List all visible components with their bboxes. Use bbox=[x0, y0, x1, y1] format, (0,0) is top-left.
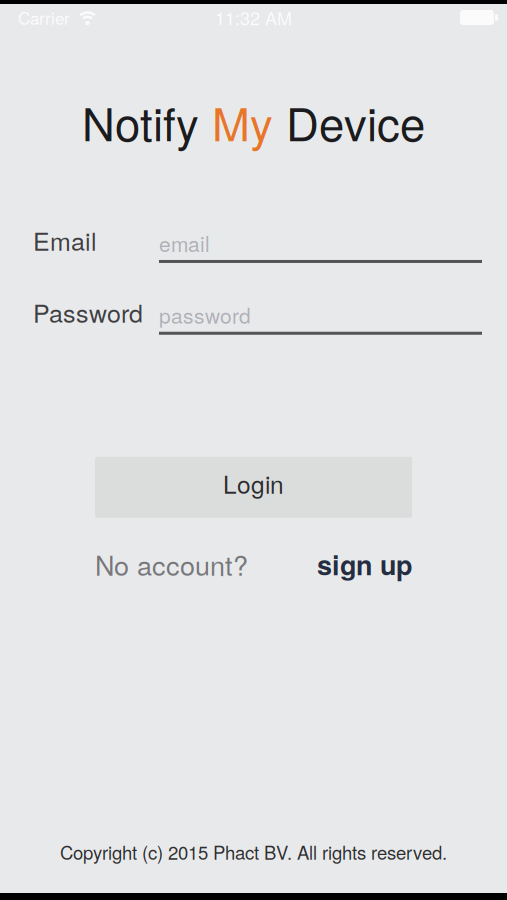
button[interactable]: Login bbox=[95, 457, 412, 518]
staticText: Login bbox=[223, 466, 284, 501]
button[interactable]: Password field bbox=[159, 300, 482, 335]
staticText: 11:32 AM bbox=[215, 5, 292, 30]
staticText: Notify bbox=[82, 89, 212, 154]
staticText: My bbox=[212, 89, 273, 154]
staticText: Carrier bbox=[18, 5, 70, 30]
staticText: Email bbox=[33, 222, 97, 258]
staticText: No account? bbox=[95, 545, 248, 583]
staticText: password bbox=[159, 300, 251, 330]
staticText: Password bbox=[33, 294, 143, 330]
staticText: Device bbox=[273, 89, 425, 154]
staticText: Copyright (c) 2015 Phact BV. All rights … bbox=[60, 838, 447, 865]
button[interactable]: Email field bbox=[159, 228, 482, 263]
button[interactable]: sign up bbox=[317, 545, 412, 583]
staticText: sign up bbox=[317, 545, 412, 583]
staticText: email bbox=[159, 228, 210, 258]
